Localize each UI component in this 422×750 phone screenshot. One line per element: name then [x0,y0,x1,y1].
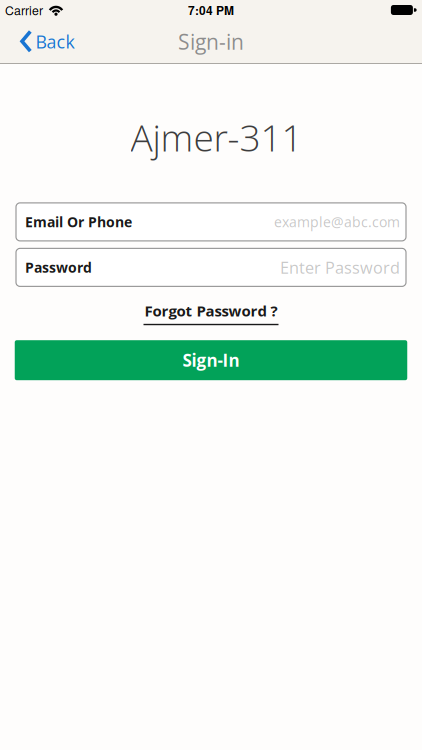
staticText: Password [25,258,92,277]
staticText: Back [35,29,74,54]
button[interactable]: Back [0,29,74,54]
staticText: 7:04 PM [188,1,234,19]
button[interactable]: Email Or Phone [16,203,406,241]
staticText: Sign-in [178,27,244,56]
staticText: example@abc.com [274,212,400,231]
staticText: Sign-In [182,349,239,372]
staticText: Email Or Phone [25,212,132,231]
staticText: Enter Password [280,256,400,278]
staticText: Forgot Password ? [144,300,277,321]
staticText: Ajmer-311 [130,112,302,162]
button[interactable]: Password [16,248,406,286]
button[interactable]: Forgot Password ? [143,286,278,325]
staticText: Carrier [5,1,43,19]
button[interactable]: Sign-In [15,340,407,380]
